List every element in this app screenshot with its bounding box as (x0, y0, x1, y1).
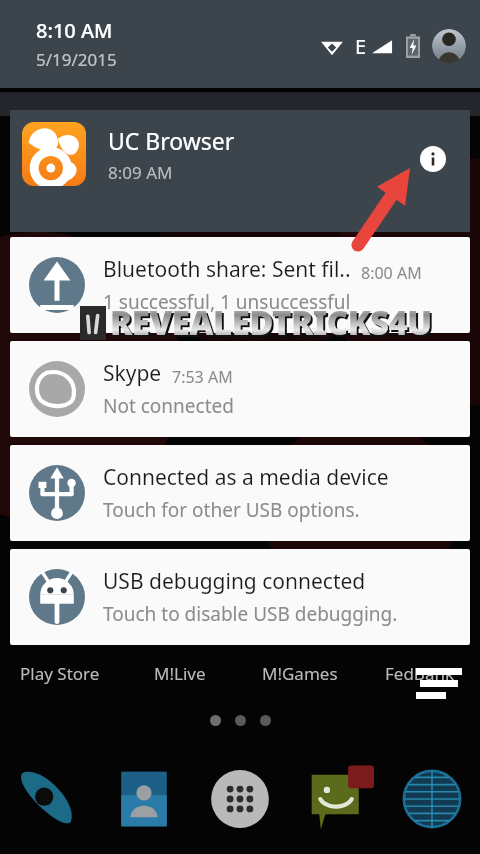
button[interactable]: User profile (432, 29, 466, 63)
button[interactable]: Apps (192, 744, 288, 854)
button[interactable]: Messaging (288, 744, 384, 854)
staticText: 8:10 AM (36, 17, 113, 44)
staticText: FedBank (385, 662, 455, 685)
button[interactable]: Contacts (96, 744, 192, 854)
staticText: 7:53 AM (172, 366, 233, 388)
staticText: E (355, 33, 367, 60)
staticText: M!Live (154, 662, 206, 685)
staticText: Not connected (103, 393, 234, 419)
staticText: Bluetooth share: Sent fil.. (103, 255, 351, 284)
button[interactable]: Bluetooth share: Sent fil.. (10, 237, 470, 333)
staticText: USB debugging connected (103, 567, 366, 596)
staticText: REVEALEDTRICKS4U (110, 300, 432, 345)
staticText: 8:00 AM (361, 262, 422, 284)
staticText: 1 successful, 1 unsuccessful (103, 289, 351, 315)
staticText: Touch to disable USB debugging. (103, 601, 398, 627)
button[interactable]: USB debugging connected (10, 549, 470, 645)
staticText: 5/19/2015 (36, 48, 117, 71)
staticText: Connected as a media device (103, 463, 389, 492)
button[interactable]: Skype (10, 341, 470, 437)
button[interactable]: Browser (384, 744, 480, 854)
staticText: 8:09 AM (108, 161, 173, 184)
button[interactable]: Phone (0, 744, 96, 854)
button[interactable]: Notification info (420, 146, 446, 172)
staticText: REVEALEDTRICKS4U (112, 302, 434, 347)
staticText: Touch for other USB options. (103, 497, 360, 523)
button[interactable]: Connected as a media device (10, 445, 470, 541)
staticText: Skype (103, 359, 162, 388)
staticText: UC Browser (108, 125, 235, 156)
staticText: Play Store (20, 662, 100, 685)
button[interactable]: UC Browser (10, 110, 470, 232)
staticText: M!Games (262, 662, 338, 685)
